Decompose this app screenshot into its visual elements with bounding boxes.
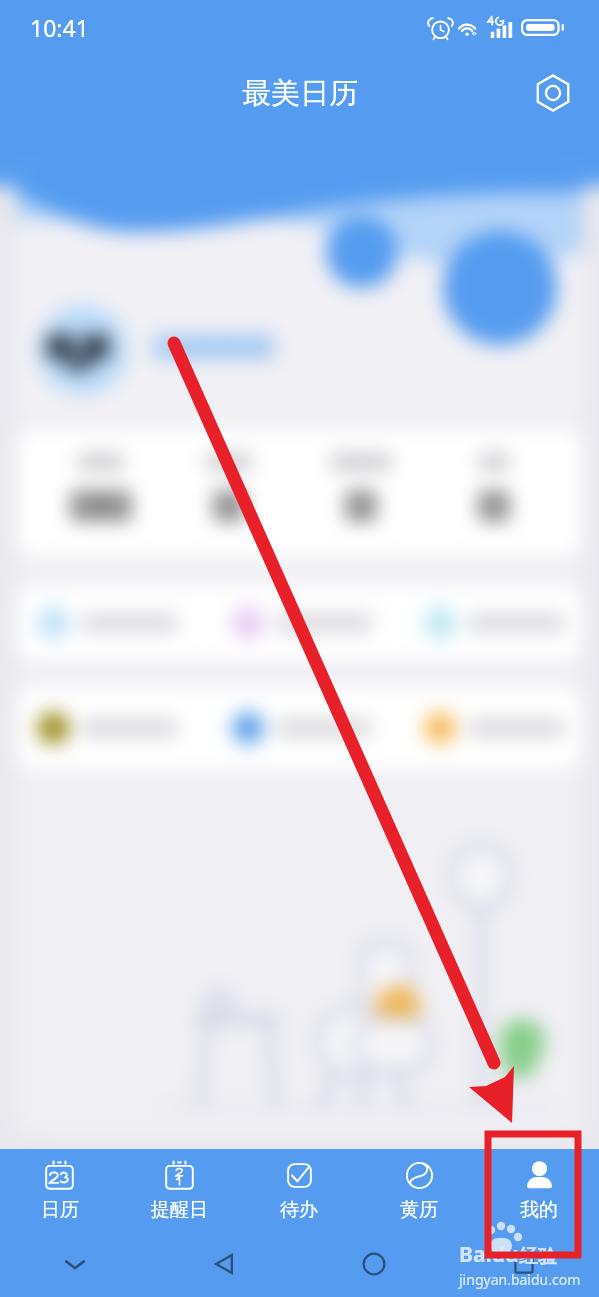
staticText: 最美日历 [242, 75, 358, 112]
button[interactable]: Recent apps [449, 1231, 599, 1297]
button[interactable]: Back [149, 1231, 299, 1297]
button[interactable]: 黄历 [359, 1149, 479, 1231]
staticText: 黄历 [400, 1198, 438, 1222]
button[interactable]: 我的 [479, 1149, 599, 1231]
staticText: Baidu [459, 1240, 519, 1269]
staticText: 10:41 [30, 12, 89, 43]
button[interactable]: Home [299, 1231, 449, 1297]
button[interactable]: 待办 [239, 1149, 359, 1231]
staticText: jingyan.baidu.com [459, 1270, 581, 1289]
button[interactable]: Settings [528, 68, 578, 118]
staticText: 提醒日 [151, 1198, 208, 1222]
staticText: 我的 [520, 1198, 558, 1222]
button[interactable]: 日历 [0, 1149, 119, 1231]
staticText: 待办 [280, 1198, 318, 1222]
button[interactable]: Hide keyboard [0, 1231, 149, 1297]
staticText: 日历 [41, 1198, 79, 1222]
button[interactable]: 提醒日 [119, 1149, 239, 1231]
staticText: 经验 [519, 1245, 557, 1269]
